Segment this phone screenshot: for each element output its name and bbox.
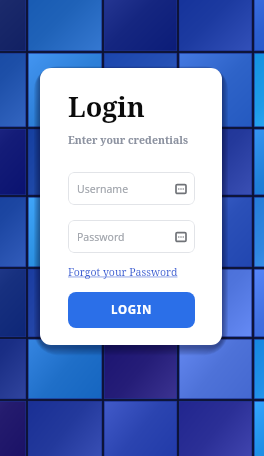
button[interactable]: Username field	[68, 172, 195, 205]
staticText: Password	[77, 230, 125, 244]
button[interactable]: Forgot your Password	[68, 265, 178, 279]
staticText: LOGIN	[111, 302, 152, 318]
button[interactable]: Password field	[68, 220, 195, 253]
button[interactable]: LOGIN	[68, 292, 195, 328]
staticText: Login	[68, 88, 145, 125]
staticText: Username	[77, 182, 129, 196]
staticText: Enter your credentials	[68, 133, 188, 147]
